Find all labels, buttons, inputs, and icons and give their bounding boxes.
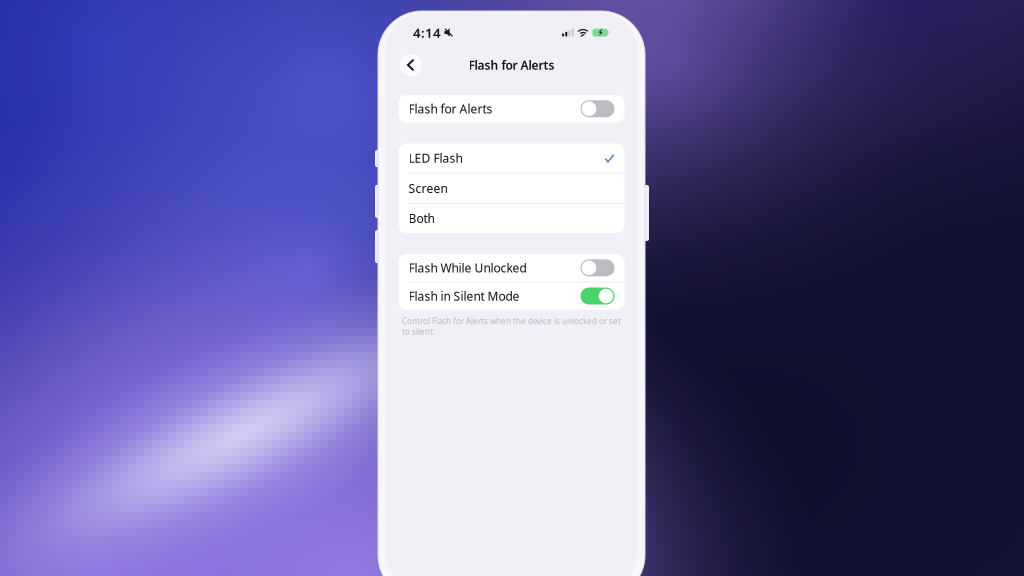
button[interactable]: Back xyxy=(398,52,424,78)
button[interactable]: Both xyxy=(398,204,624,233)
staticText: Flash for Alerts xyxy=(408,101,492,117)
staticText: Screen xyxy=(408,180,447,196)
staticText: Flash in Silent Mode xyxy=(408,288,519,304)
button[interactable]: LED Flash xyxy=(398,143,624,173)
button[interactable]: Screen xyxy=(398,174,624,203)
staticText: Control Flash for Alerts when the device… xyxy=(402,316,621,337)
staticText: Both xyxy=(408,210,434,226)
button[interactable]: Flash in Silent Mode xyxy=(398,282,624,310)
staticText: Flash for Alerts xyxy=(468,57,554,73)
staticText: LED Flash xyxy=(408,150,462,166)
button[interactable]: Flash for Alerts xyxy=(398,95,624,122)
button[interactable]: Flash While Unlocked xyxy=(398,254,624,282)
staticText: 4:14 xyxy=(413,24,441,41)
staticText: Flash While Unlocked xyxy=(408,260,526,276)
